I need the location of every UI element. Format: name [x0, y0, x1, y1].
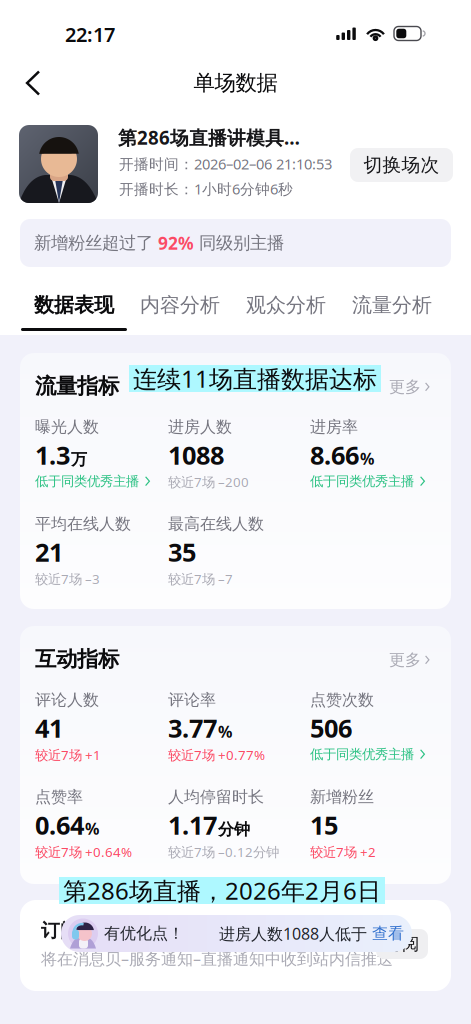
staticText: %	[85, 818, 99, 839]
staticText: 流量分析	[352, 293, 432, 317]
staticText: 单场数据	[193, 70, 277, 96]
staticText: 订阅	[385, 933, 419, 955]
button[interactable]: 流量分析	[339, 292, 445, 335]
staticText: 数据表现	[34, 293, 114, 317]
staticText: 8.66	[310, 438, 359, 472]
staticText: 3.77	[168, 711, 217, 745]
staticText: 506	[310, 711, 352, 745]
staticText: 互动指标	[35, 646, 119, 672]
staticText: 切换场次	[363, 153, 439, 176]
staticText: 新增粉丝	[310, 787, 374, 807]
staticText: 41	[35, 711, 63, 745]
staticText: 低于同类优秀主播	[35, 473, 139, 489]
staticText: 进房率	[310, 417, 358, 437]
button[interactable]: 订阅	[376, 929, 428, 959]
button[interactable]: 返回	[11, 61, 55, 105]
staticText: 人均停留时长	[168, 787, 264, 807]
staticText: 35	[168, 535, 196, 569]
staticText: 较近7场 +1	[35, 746, 101, 764]
staticText: 将在消息贝–服务通知–直播通知中收到站内信推送	[41, 948, 393, 969]
staticText: 万	[71, 449, 87, 469]
staticText: 更多	[389, 377, 421, 397]
button[interactable]: 切换场次	[350, 148, 453, 182]
staticText: 曝光人数	[35, 417, 99, 437]
staticText: 低于同类优秀主播	[310, 473, 414, 489]
staticText: 评论率	[168, 690, 216, 710]
button[interactable]: 更多	[375, 644, 429, 676]
staticText: 点赞率	[35, 787, 83, 807]
staticText: %	[360, 448, 374, 469]
staticText: 点赞次数	[310, 690, 374, 710]
staticText: 1088	[168, 438, 224, 472]
staticText: 92%	[158, 231, 194, 254]
staticText: 较近7场 –200	[168, 473, 249, 491]
staticText: 订阅开播提醒，不错过每场直播	[41, 919, 307, 942]
staticText: 新增粉丝超过了	[34, 232, 158, 254]
staticText: 0.64	[35, 808, 84, 842]
staticText: 15	[310, 808, 338, 842]
staticText: 连续11场直播数据达标	[133, 363, 377, 394]
staticText: 较近7场 +2	[310, 843, 376, 861]
staticText: 有优化点！	[104, 924, 184, 943]
staticText: 开播时间：2026–02–06 21:10:53	[119, 154, 332, 173]
staticText: 21	[35, 535, 63, 569]
staticText: 同级别主播	[194, 232, 284, 254]
staticText: 最高在线人数	[168, 514, 264, 534]
staticText: 22:17	[65, 21, 115, 48]
staticText: 1.3	[35, 438, 70, 472]
staticText: 流量指标	[35, 373, 119, 399]
staticText: 较近7场 +0.64%	[35, 843, 132, 861]
staticText: 进房人数	[168, 417, 232, 437]
staticText: 平均在线人数	[35, 514, 131, 534]
button[interactable]: 有优化点！	[61, 915, 412, 952]
button[interactable]: 观众分析	[233, 292, 339, 335]
staticText: 内容分析	[140, 293, 220, 317]
staticText: 较近7场 –3	[35, 570, 100, 588]
staticText: 更多	[389, 650, 421, 670]
staticText: 较近7场 –7	[168, 570, 233, 588]
staticText: 分钟	[218, 819, 250, 839]
staticText: 评论人数	[35, 690, 99, 710]
staticText: %	[218, 721, 232, 742]
button[interactable]: 更多	[375, 371, 429, 403]
button[interactable]: 内容分析	[127, 292, 233, 335]
staticText: 查看	[372, 924, 404, 943]
staticText: 第286场直播讲模具…	[118, 125, 300, 150]
staticText: 较近7场 +0.77%	[168, 746, 265, 764]
staticText: 进房人数1088人低于	[219, 923, 367, 944]
staticText: 第286场直播，2026年2月6日	[63, 875, 381, 906]
staticText: 开播时长：1小时6分钟6秒	[119, 179, 293, 198]
staticText: 较近7场 –0.12分钟	[168, 843, 279, 861]
staticText: 低于同类优秀主播	[310, 746, 414, 762]
staticText: 1.17	[168, 808, 217, 842]
button[interactable]: 数据表现	[21, 292, 127, 335]
staticText: 观众分析	[246, 293, 326, 317]
